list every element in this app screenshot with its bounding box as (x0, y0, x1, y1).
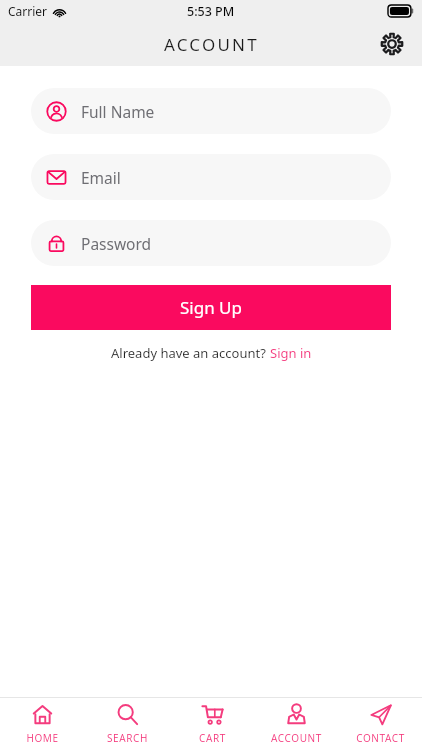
staticText: Already have an account? (111, 344, 270, 362)
button[interactable]: Sign Up (31, 285, 391, 330)
staticText: CONTACT (356, 731, 405, 745)
staticText: Email (81, 167, 121, 188)
staticText: Sign Up (180, 296, 242, 319)
staticText: ACCOUNT (271, 731, 322, 745)
button[interactable]: Password (31, 220, 391, 266)
staticText: Full Name (81, 101, 155, 122)
staticText: ACCOUNT (164, 33, 259, 56)
staticText: CART (199, 731, 226, 745)
button[interactable]: HOME (0, 698, 85, 750)
staticText: SEARCH (107, 731, 148, 745)
staticText: HOME (26, 731, 59, 745)
button[interactable]: SEARCH (85, 698, 170, 750)
button[interactable]: CONTACT (338, 698, 422, 750)
staticText: Password (81, 233, 152, 254)
button[interactable]: CART (170, 698, 254, 750)
button[interactable]: Full Name (31, 88, 391, 134)
staticText: 5:53 PM (187, 3, 235, 20)
button[interactable]: ACCOUNT (254, 698, 338, 750)
staticText: Carrier (8, 3, 48, 19)
button[interactable]: Email (31, 154, 391, 200)
button[interactable]: Settings (372, 24, 412, 64)
staticText: Sign in (270, 344, 312, 362)
button[interactable]: Sign in (270, 344, 312, 362)
